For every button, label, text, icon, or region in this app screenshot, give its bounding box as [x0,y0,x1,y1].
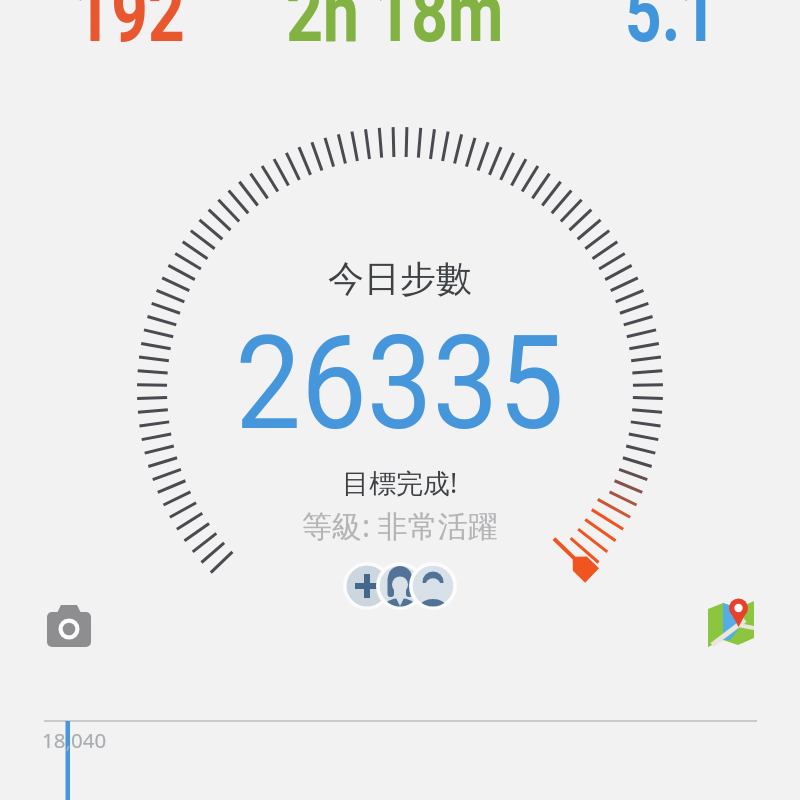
button[interactable] [40,598,98,654]
button[interactable] [379,562,421,610]
button[interactable] [412,562,457,610]
button[interactable] [343,562,391,610]
button[interactable] [702,592,760,652]
